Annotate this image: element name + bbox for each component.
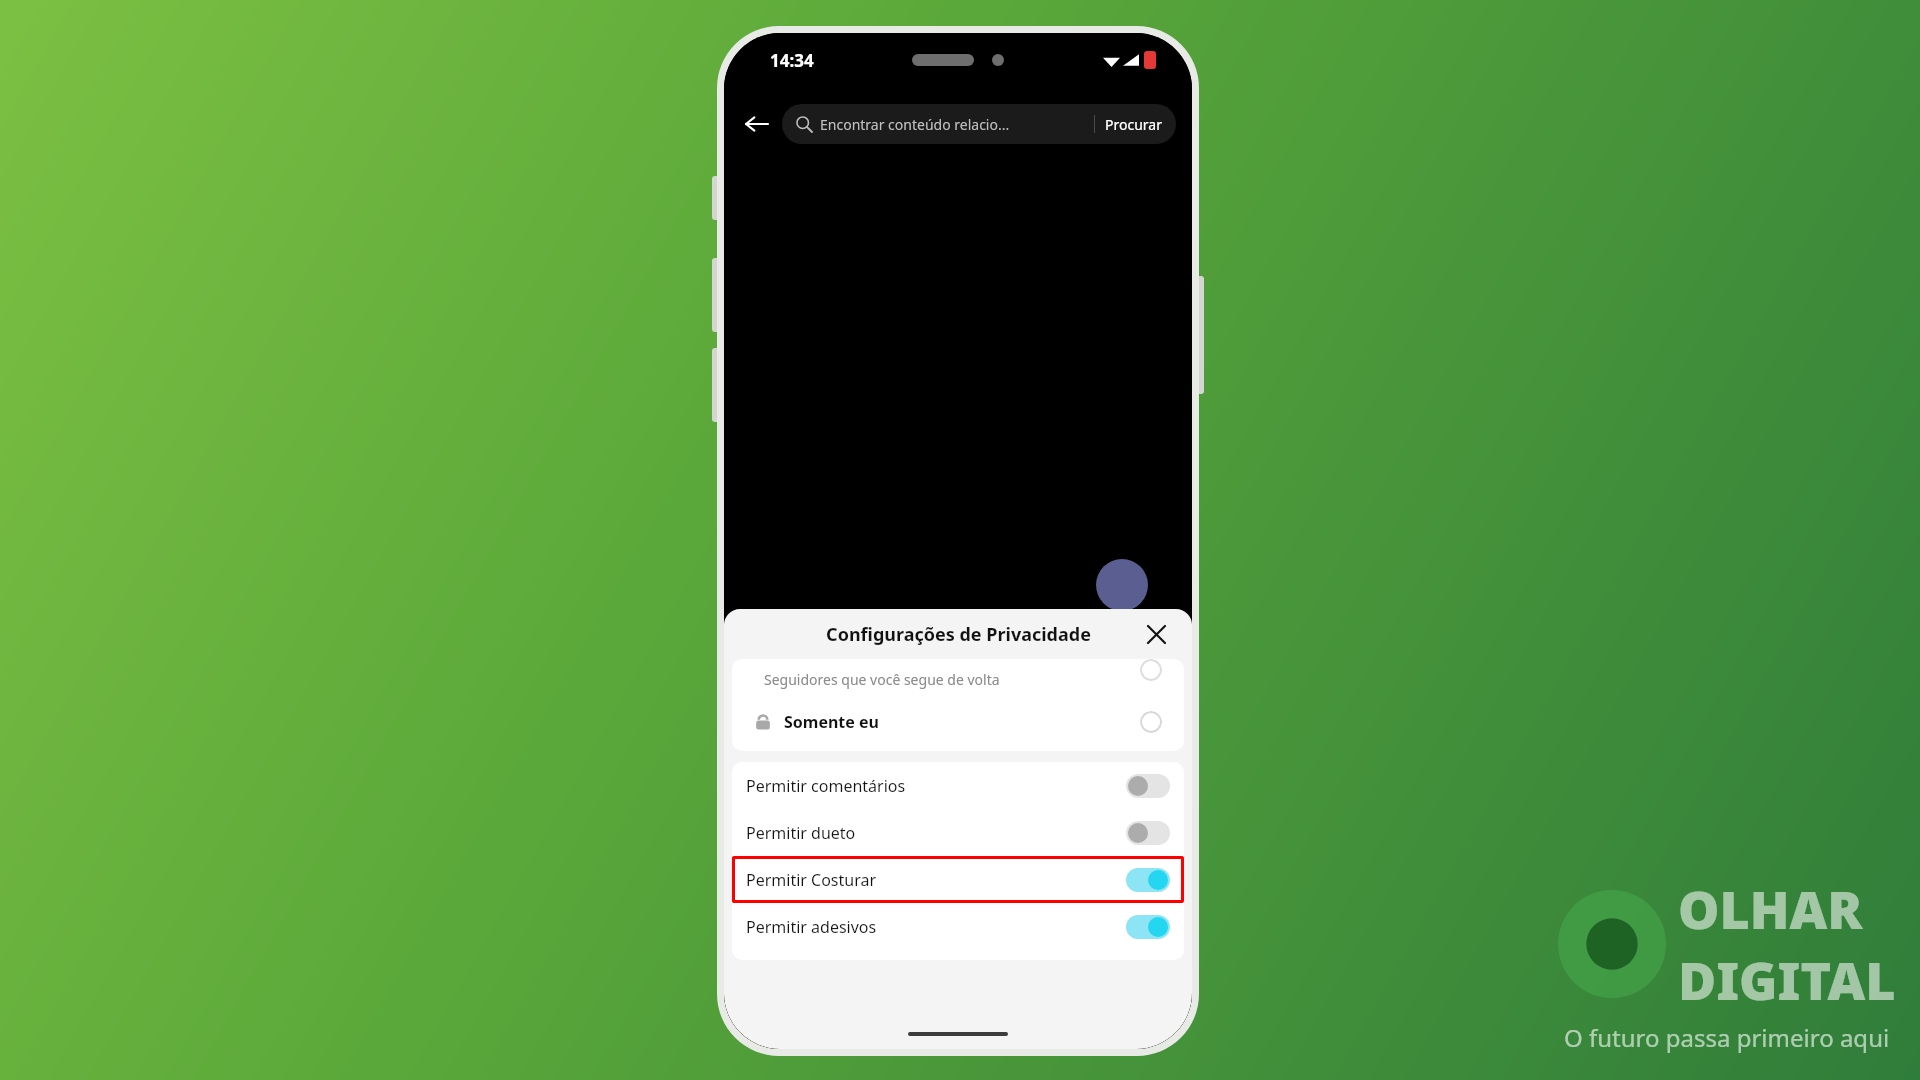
staticText: Permitir Costurar <box>746 869 877 891</box>
staticText: Encontrar conteúdo relacio... <box>820 115 1010 134</box>
staticText: Seguidores que você segue de volta <box>764 670 1000 689</box>
button[interactable]: Seguidores que você segue de volta <box>732 659 1184 693</box>
staticText: Permitir comentários <box>746 775 906 797</box>
button[interactable]: Somente eu <box>732 693 1184 751</box>
staticText: Permitir dueto <box>746 822 856 844</box>
staticText: O futuro passa primeiro aqui <box>1564 1021 1890 1054</box>
button[interactable]: Procurar <box>1105 115 1162 134</box>
button[interactable]: Permitir adesivos <box>732 903 1184 950</box>
staticText: 14:34 <box>770 49 814 72</box>
staticText: DIGITAL <box>1678 944 1896 1015</box>
staticText: Somente eu <box>784 711 879 733</box>
staticText: Configurações de Privacidade <box>826 622 1091 647</box>
button[interactable]: Permitir comentários <box>732 762 1184 809</box>
staticText: OLHAR <box>1678 873 1863 944</box>
button[interactable]: Encontrar conteúdo relacio... <box>782 104 1176 144</box>
button[interactable]: Permitir Costurar <box>732 856 1184 903</box>
button[interactable]: Permitir dueto <box>732 809 1184 856</box>
button[interactable]: Fechar <box>1140 618 1172 650</box>
button[interactable]: Voltar <box>738 105 776 143</box>
staticText: Permitir adesivos <box>746 916 877 938</box>
